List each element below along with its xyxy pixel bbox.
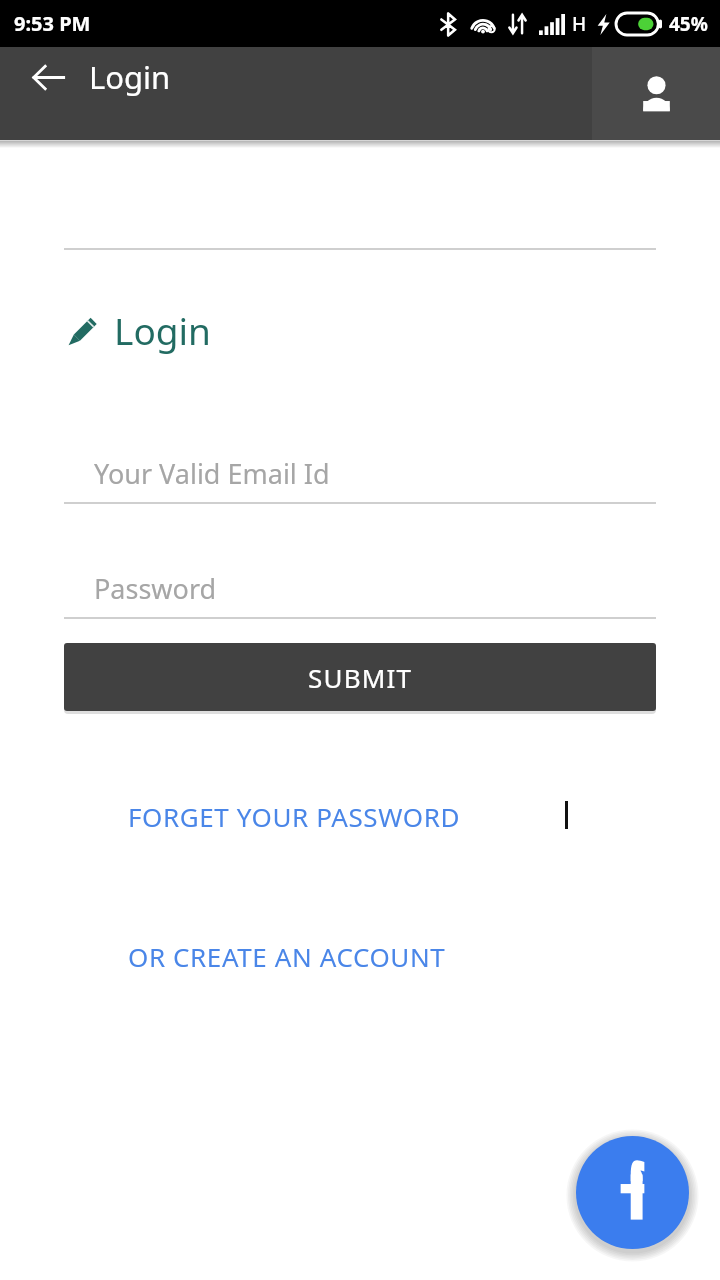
button[interactable]: Your Valid Email Id: [64, 444, 656, 502]
staticText: Your Valid Email Id: [94, 455, 330, 492]
staticText: H: [572, 11, 587, 37]
button[interactable]: Sign in with Facebook: [576, 1136, 689, 1249]
staticText: Login: [89, 56, 171, 98]
button[interactable]: SUBMIT: [64, 643, 656, 711]
button[interactable]: OR CREATE AN ACCOUNT: [128, 939, 446, 974]
staticText: 45%: [669, 11, 708, 37]
staticText: OR CREATE AN ACCOUNT: [128, 939, 446, 974]
staticText: SUBMIT: [308, 660, 413, 695]
staticText: Login: [114, 305, 211, 355]
button[interactable]: Password: [64, 559, 656, 617]
button[interactable]: Back: [18, 47, 78, 107]
staticText: Password: [94, 570, 217, 607]
staticText: 9:53 PM: [14, 10, 91, 37]
button[interactable]: Profile: [592, 47, 720, 140]
button[interactable]: FORGET YOUR PASSWORD: [128, 799, 460, 834]
staticText: FORGET YOUR PASSWORD: [128, 799, 460, 834]
